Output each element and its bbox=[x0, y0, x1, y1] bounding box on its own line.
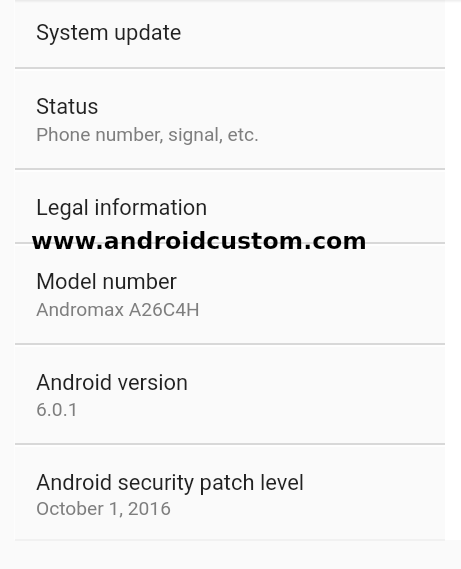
staticText: Andromax A26C4H bbox=[36, 298, 200, 321]
staticText: Model number bbox=[36, 269, 177, 295]
button[interactable]: Android security patch level bbox=[15, 444, 445, 540]
button[interactable]: Legal information bbox=[15, 169, 445, 243]
staticText: System update bbox=[36, 20, 182, 46]
staticText: www.androidcustom.com bbox=[31, 227, 367, 254]
button[interactable]: Android version bbox=[15, 344, 445, 444]
staticText: Android security patch level bbox=[36, 470, 305, 496]
staticText: Phone number, signal, etc. bbox=[36, 123, 260, 146]
staticText: Legal information bbox=[36, 195, 208, 221]
button[interactable]: Status bbox=[15, 68, 445, 168]
staticText: October 1, 2016 bbox=[36, 497, 171, 520]
staticText: Android version bbox=[36, 370, 189, 396]
button[interactable]: System update bbox=[15, 0, 445, 68]
button[interactable]: Model number bbox=[15, 243, 445, 344]
staticText: Status bbox=[36, 94, 99, 120]
staticText: 6.0.1 bbox=[36, 398, 79, 421]
